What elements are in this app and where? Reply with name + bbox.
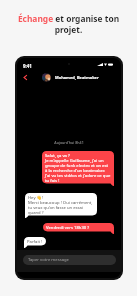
button[interactable]: Vendredi vers 18h30 ? [43,223,114,234]
staticText: 9:41 [23,63,32,69]
staticText: Taper votre message [28,257,69,263]
staticText: Salut, ça va ? Je m'appelle Guillaume, j… [45,153,111,183]
staticText: Vendredi vers 18h30 ? [46,225,90,231]
staticText: Mohamed, Beatmaker [55,75,99,80]
button[interactable]: Hey 👋! Merci beaucoup ! Oui carrément, t… [25,193,97,218]
staticText: Échange et organise ton projet. [10,13,127,35]
button[interactable]: Back [21,73,30,82]
staticText: Hey 👋! Merci beaucoup ! Oui carrément, t… [28,195,94,215]
button[interactable]: Parfait ! [24,237,46,248]
staticText: Aujourd'hui 8h41 [17,140,121,145]
button[interactable]: Salut, ça va ? Je m'appelle Guillaume, j… [42,151,114,186]
staticText: Parfait ! [27,239,43,245]
button[interactable]: Taper votre message [23,255,116,265]
